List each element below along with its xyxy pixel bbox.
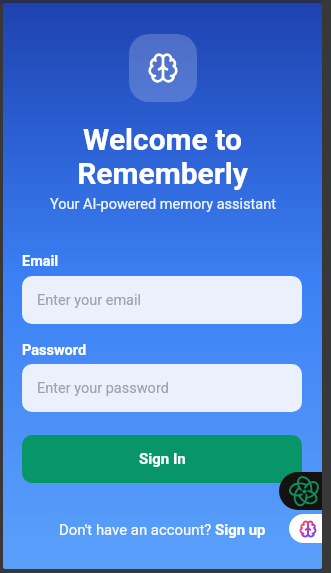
button[interactable]: Sign In xyxy=(22,435,302,483)
staticText: Your AI-powered memory assistant xyxy=(50,196,276,213)
button[interactable]: Open assistant xyxy=(279,472,322,510)
staticText: Welcome to Rememberly xyxy=(3,123,322,191)
staticText: Sign In xyxy=(139,450,186,468)
staticText: Don't have an account? Sign up xyxy=(59,521,266,538)
staticText: Enter your password xyxy=(37,380,169,397)
staticText: Enter your email xyxy=(37,292,142,309)
button[interactable]: Rememberly badge xyxy=(289,514,322,543)
button[interactable]: Don't have an account? Sign up xyxy=(59,521,266,538)
staticText: Password xyxy=(22,342,87,359)
staticText: Email xyxy=(22,253,59,270)
button[interactable]: Enter your password xyxy=(22,364,302,412)
button[interactable]: Enter your email xyxy=(22,276,302,324)
